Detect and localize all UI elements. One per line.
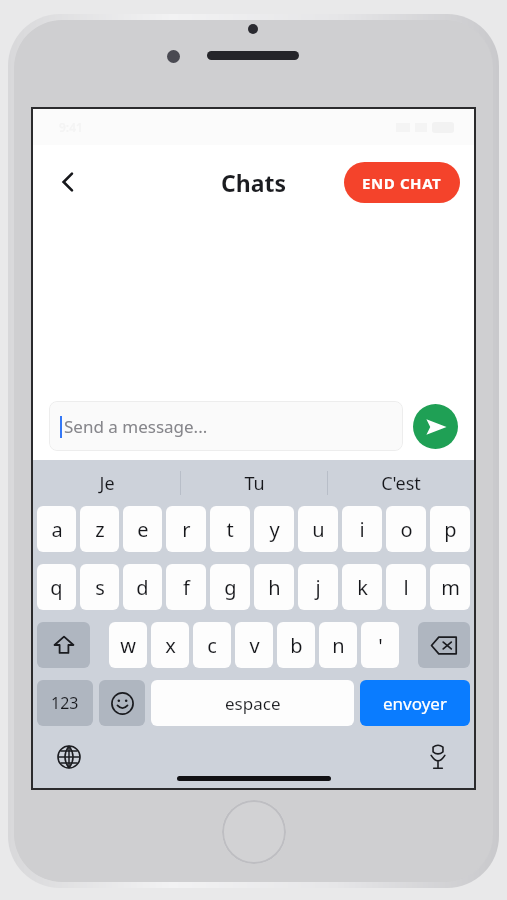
button[interactable]: i [342, 506, 382, 552]
staticText: n [332, 632, 345, 659]
staticText: e [137, 516, 149, 543]
button[interactable]: Shift [37, 622, 90, 668]
staticText: b [290, 632, 303, 659]
staticText: p [444, 516, 457, 543]
button[interactable]: v [235, 622, 273, 668]
button[interactable]: c [193, 622, 231, 668]
button[interactable]: a [37, 506, 76, 552]
staticText: g [224, 574, 237, 601]
button[interactable]: ' [361, 622, 399, 668]
button[interactable]: u [298, 506, 338, 552]
button[interactable]: t [210, 506, 250, 552]
button[interactable]: d [123, 564, 162, 610]
button[interactable]: Change keyboard language [47, 735, 91, 779]
staticText: u [312, 516, 325, 543]
button[interactable]: Backspace [418, 622, 470, 668]
button[interactable]: n [319, 622, 357, 668]
staticText: k [357, 574, 368, 601]
button[interactable]: Send [413, 404, 458, 449]
button[interactable]: Tu [181, 460, 327, 506]
staticText: Je [99, 471, 115, 496]
staticText: envoyer [383, 692, 447, 715]
button[interactable]: b [277, 622, 315, 668]
staticText: a [51, 516, 63, 543]
staticText: f [183, 574, 190, 601]
button[interactable]: Back [45, 159, 91, 205]
button[interactable]: o [386, 506, 426, 552]
button[interactable]: j [298, 564, 338, 610]
button[interactable]: k [342, 564, 382, 610]
button[interactable]: h [254, 564, 294, 610]
button[interactable]: Je [33, 460, 180, 506]
staticText: t [226, 516, 234, 543]
button[interactable]: Home [222, 800, 286, 864]
button[interactable]: y [254, 506, 294, 552]
staticText: m [441, 574, 460, 601]
button[interactable]: f [166, 564, 206, 610]
staticText: z [95, 516, 105, 543]
button[interactable]: envoyer [360, 680, 470, 726]
button[interactable]: g [210, 564, 250, 610]
button[interactable]: z [80, 506, 119, 552]
staticText: 123 [51, 692, 79, 714]
staticText: w [120, 632, 136, 659]
staticText: l [403, 574, 409, 601]
staticText: s [95, 574, 105, 601]
button[interactable]: Send a message... [49, 401, 403, 451]
staticText: Send a message... [64, 415, 208, 438]
button[interactable]: e [123, 506, 162, 552]
staticText: y [269, 516, 280, 543]
staticText: j [315, 574, 321, 601]
staticText: v [249, 632, 260, 659]
button[interactable]: m [430, 564, 470, 610]
button[interactable]: r [166, 506, 206, 552]
staticText: ' [378, 632, 383, 659]
staticText: espace [225, 692, 281, 715]
staticText: c [207, 632, 217, 659]
staticText: q [50, 574, 63, 601]
button[interactable]: Dictate [416, 735, 460, 779]
button[interactable]: C'est [328, 460, 474, 506]
button[interactable]: END CHAT [344, 162, 460, 203]
button[interactable]: p [430, 506, 470, 552]
staticText: i [359, 516, 365, 543]
button[interactable]: l [386, 564, 426, 610]
button[interactable]: s [80, 564, 119, 610]
staticText: Chats [221, 167, 287, 198]
staticText: C'est [381, 471, 421, 496]
button[interactable]: espace [151, 680, 354, 726]
staticText: d [136, 574, 149, 601]
staticText: h [268, 574, 281, 601]
staticText: x [165, 632, 176, 659]
button[interactable]: q [37, 564, 76, 610]
button[interactable]: w [109, 622, 147, 668]
button[interactable]: 123 [37, 680, 93, 726]
staticText: o [400, 516, 413, 543]
button[interactable]: x [151, 622, 189, 668]
staticText: END CHAT [362, 173, 442, 193]
staticText: r [182, 516, 191, 543]
button[interactable]: Emoji [99, 680, 145, 726]
staticText: Tu [244, 471, 265, 496]
